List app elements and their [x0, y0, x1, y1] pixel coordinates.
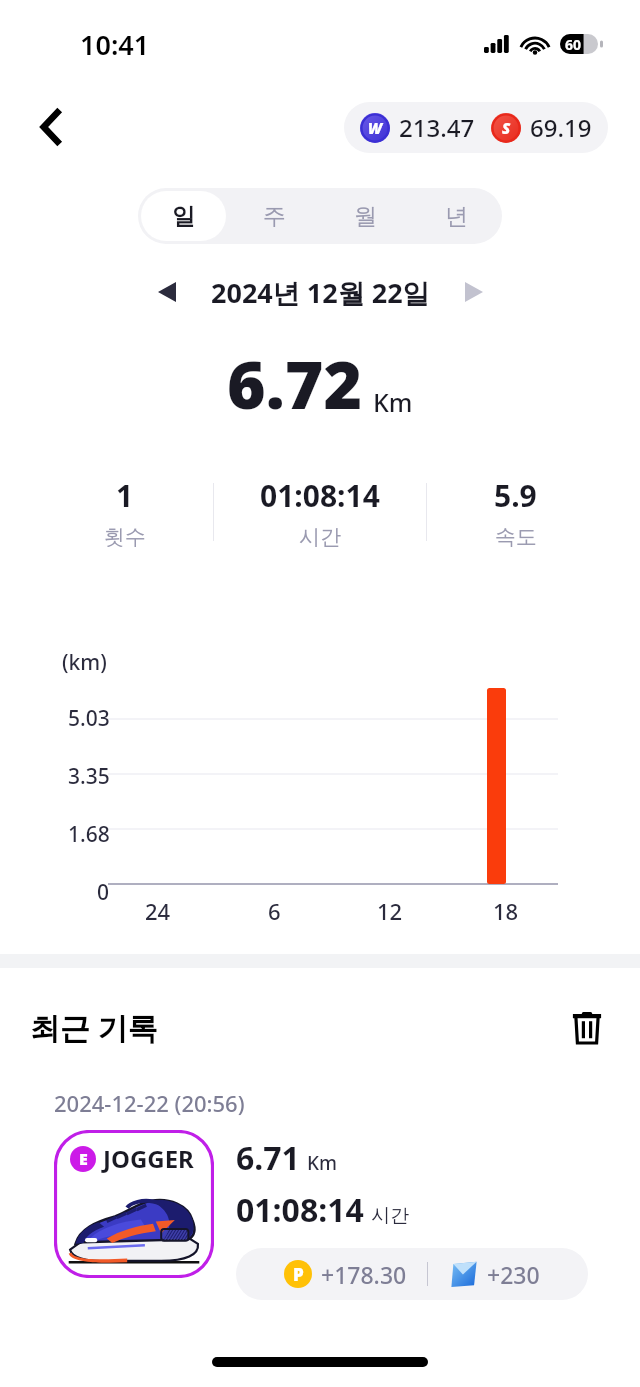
button[interactable]: 2024-12-22 (20:56)	[34, 1070, 606, 1320]
staticText: 년	[445, 202, 468, 231]
staticText: 최근 기록	[30, 1007, 158, 1048]
button[interactable]: Next day	[452, 270, 496, 314]
staticText: 6.71	[236, 1136, 300, 1180]
button[interactable]: 년	[414, 191, 499, 241]
staticText: 6.72	[227, 338, 363, 428]
staticText: 2024-12-22 (20:56)	[54, 1088, 245, 1118]
staticText: 01:08:14	[236, 1188, 364, 1232]
button[interactable]: P	[236, 1248, 588, 1300]
button[interactable]: 주	[232, 191, 317, 241]
staticText: 60	[565, 35, 582, 54]
button[interactable]: 1	[36, 452, 604, 572]
staticText: 0	[97, 878, 110, 907]
staticText: S	[502, 118, 511, 138]
staticText: +178.30	[321, 1259, 407, 1290]
staticText: 69.19	[530, 111, 592, 144]
staticText: Km	[373, 385, 413, 419]
staticText: 속도	[495, 524, 537, 550]
staticText: P	[293, 1263, 304, 1286]
staticText: 3.35	[68, 762, 110, 791]
button[interactable]: 월	[323, 191, 408, 241]
staticText: 213.47	[399, 111, 475, 144]
staticText: 시간	[299, 524, 341, 550]
button[interactable]: W	[344, 102, 608, 153]
staticText: E	[79, 1148, 88, 1170]
staticText: (km)	[62, 648, 107, 677]
staticText: 횟수	[104, 524, 146, 550]
staticText: JOGGER	[103, 1142, 194, 1175]
staticText: 18	[493, 896, 519, 924]
staticText: 6	[268, 896, 281, 924]
staticText: 시간	[371, 1204, 409, 1228]
staticText: 12	[377, 896, 403, 924]
staticText: W	[368, 118, 383, 138]
staticText: 일	[172, 202, 195, 231]
staticText: +230	[487, 1259, 540, 1290]
staticText: 주	[263, 202, 286, 231]
staticText: 01:08:14	[260, 475, 380, 516]
button[interactable]: Back	[26, 101, 78, 153]
staticText: 월	[354, 202, 377, 231]
staticText: Km	[307, 1150, 338, 1176]
staticText: 24	[145, 896, 171, 924]
staticText: 1.68	[68, 820, 110, 849]
staticText: 1	[116, 475, 134, 516]
staticText: 5.9	[494, 475, 537, 516]
staticText: 2024년 12월 22일	[211, 274, 430, 311]
staticText: 10:41	[80, 26, 150, 63]
staticText: 5.03	[68, 704, 110, 733]
button[interactable]: Delete records	[562, 1002, 612, 1052]
button[interactable]: Previous day	[145, 270, 189, 314]
button[interactable]: 일	[141, 191, 226, 241]
